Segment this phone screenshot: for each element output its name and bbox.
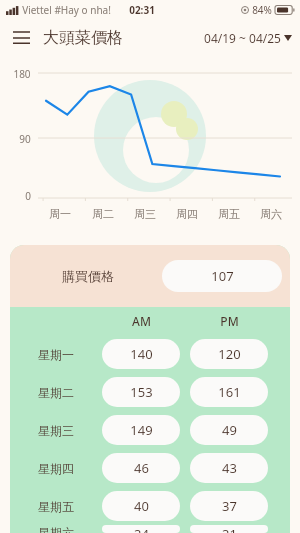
staticText: 31 — [222, 525, 237, 533]
button[interactable]: 31 — [190, 525, 268, 533]
button[interactable]: 107 — [162, 260, 282, 292]
button[interactable]: 43 — [190, 453, 268, 483]
staticText: 04/19 ~ 04/25 — [204, 30, 281, 46]
staticText: 大頭菜價格 — [43, 28, 123, 48]
staticText: 37 — [222, 497, 237, 515]
button[interactable]: 37 — [190, 491, 268, 521]
staticText: 34 — [134, 525, 149, 533]
staticText: 周一 — [49, 207, 71, 221]
staticText: 46 — [134, 459, 149, 477]
button[interactable]: 購買價格 — [10, 245, 290, 307]
staticText: 140 — [130, 345, 153, 363]
staticText: 星期三 — [38, 423, 74, 438]
staticText: 星期四 — [38, 461, 74, 476]
staticText: PM — [220, 313, 239, 329]
staticText: 周六 — [260, 207, 282, 221]
staticText: 149 — [130, 421, 153, 439]
staticText: 星期一 — [38, 347, 74, 362]
staticText: 43 — [222, 459, 237, 477]
button[interactable]: 140 — [102, 339, 180, 369]
staticText: 星期五 — [38, 499, 74, 514]
button[interactable]: 34 — [102, 525, 180, 533]
button[interactable]: 04/19 ~ 04/25 — [204, 30, 292, 46]
staticText: Viettel #Hay o nha! — [22, 3, 111, 17]
staticText: 周二 — [92, 207, 114, 221]
staticText: 153 — [130, 383, 153, 401]
staticText: 星期二 — [38, 385, 74, 400]
staticText: AM — [132, 313, 151, 329]
button[interactable]: 40 — [102, 491, 180, 521]
button[interactable]: Menu — [6, 23, 36, 53]
staticText: 周三 — [134, 207, 156, 221]
staticText: 107 — [211, 267, 234, 285]
button[interactable]: 120 — [190, 339, 268, 369]
staticText: 84% — [252, 3, 272, 17]
button[interactable]: 46 — [102, 453, 180, 483]
button[interactable]: 153 — [102, 377, 180, 407]
staticText: 120 — [218, 345, 241, 363]
staticText: 購買價格 — [62, 268, 114, 284]
button[interactable]: 49 — [190, 415, 268, 445]
staticText: 周四 — [176, 207, 198, 221]
staticText: 周五 — [218, 207, 240, 221]
staticText: 02:31 — [129, 3, 155, 17]
staticText: 40 — [134, 497, 149, 515]
button[interactable]: 149 — [102, 415, 180, 445]
staticText: 180 — [13, 67, 31, 81]
staticText: 161 — [218, 383, 241, 401]
button[interactable]: 161 — [190, 377, 268, 407]
staticText: 0 — [25, 189, 31, 203]
staticText: 星期六 — [38, 525, 74, 533]
staticText: 49 — [222, 421, 237, 439]
staticText: 90 — [19, 132, 31, 146]
